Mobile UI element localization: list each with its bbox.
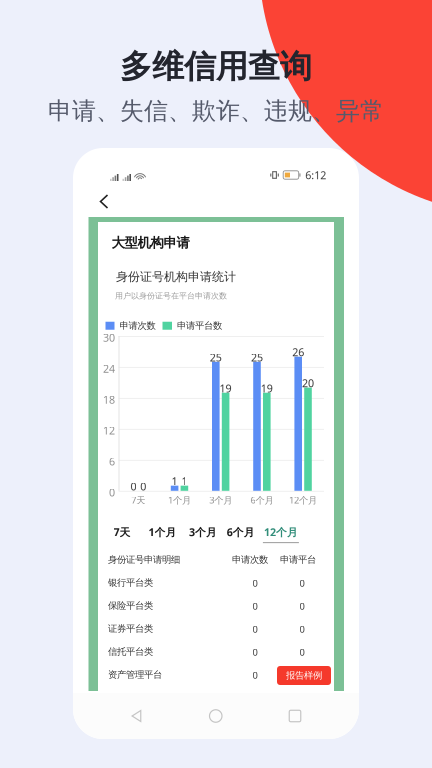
staticText: 信托平台类 <box>108 646 153 657</box>
button[interactable]: Back <box>122 701 151 731</box>
staticText: 0 <box>252 623 257 635</box>
staticText: 1 <box>172 474 178 488</box>
staticText: 0 <box>299 669 304 681</box>
staticText: 用户以身份证号在平台申请次数 <box>115 291 227 301</box>
staticText: 银行平台类 <box>108 577 153 588</box>
staticText: 申请平台数 <box>177 320 222 331</box>
staticText: 申请、失信、欺诈、违规、异常 <box>48 96 384 126</box>
staticText: 6 <box>109 454 115 468</box>
staticText: 3个月 <box>189 525 217 539</box>
staticText: 1 <box>181 474 187 488</box>
button[interactable]: Back <box>92 187 116 216</box>
staticText: 12个月 <box>264 525 298 539</box>
staticText: 0 <box>252 577 257 589</box>
staticText: 6个月 <box>227 525 255 539</box>
staticText: 1个月 <box>148 525 176 539</box>
staticText: 身份证号申请明细 <box>108 554 180 565</box>
staticText: 申请平台 <box>280 554 316 565</box>
staticText: 3个月 <box>209 494 232 506</box>
staticText: 6个月 <box>250 494 273 506</box>
button[interactable]: Recents <box>280 701 310 731</box>
button[interactable]: 3个月 <box>173 525 233 543</box>
staticText: 12 <box>103 423 115 438</box>
staticText: 申请次数 <box>119 320 155 331</box>
button[interactable]: 报告样例 <box>277 666 331 685</box>
staticText: 0 <box>252 669 257 681</box>
staticText: 申请次数 <box>232 554 268 565</box>
staticText: 0 <box>252 600 257 612</box>
button[interactable]: 7天 <box>92 525 152 543</box>
staticText: 大型机构申请 <box>111 234 189 251</box>
button[interactable]: 6个月 <box>211 525 271 543</box>
staticText: 0 <box>299 623 304 635</box>
staticText: 证券平台类 <box>108 623 153 634</box>
staticText: 25 <box>251 350 263 364</box>
staticText: 25 <box>210 350 222 364</box>
staticText: 报告样例 <box>286 670 322 681</box>
staticText: 0 <box>252 646 257 658</box>
staticText: 0 <box>299 577 304 589</box>
staticText: 1个月 <box>168 494 191 506</box>
staticText: 7天 <box>131 494 145 506</box>
staticText: 保险平台类 <box>108 600 153 611</box>
button[interactable]: 12个月 <box>251 525 311 543</box>
staticText: 0 <box>299 600 304 612</box>
staticText: 19 <box>220 381 232 395</box>
staticText: 12个月 <box>289 494 317 506</box>
staticText: 0 <box>299 646 304 658</box>
staticText: 多维信用查询 <box>120 47 312 86</box>
staticText: 资产管理平台 <box>108 669 162 680</box>
staticText: 0 <box>109 485 115 499</box>
button[interactable]: Home <box>200 701 231 731</box>
staticText: 19 <box>261 381 273 395</box>
button[interactable]: 1个月 <box>132 525 192 543</box>
staticText: 7天 <box>113 525 130 539</box>
staticText: 20 <box>302 376 314 390</box>
staticText: 身份证号机构申请统计 <box>116 269 236 284</box>
staticText: 24 <box>103 361 115 376</box>
staticText: 18 <box>103 392 115 407</box>
staticText: 26 <box>292 345 304 359</box>
staticText: 30 <box>103 330 115 345</box>
staticText: 0 <box>140 479 146 493</box>
staticText: 0 <box>130 479 136 493</box>
staticText: 6:12 <box>305 168 326 182</box>
